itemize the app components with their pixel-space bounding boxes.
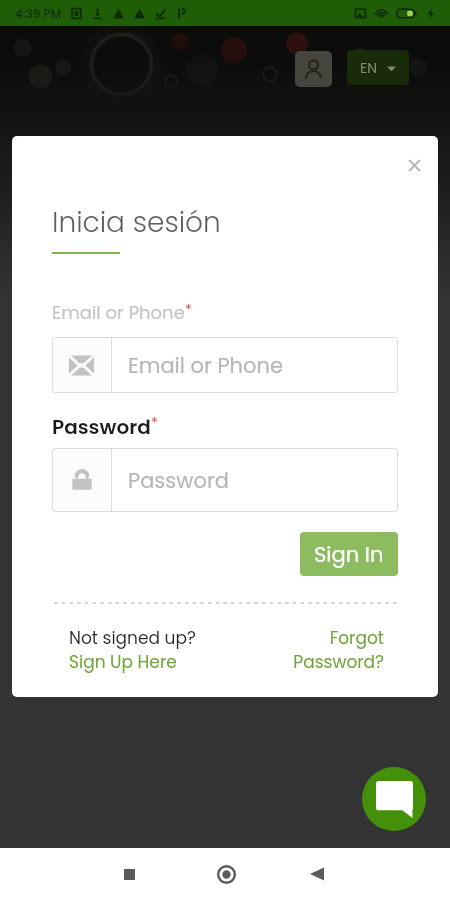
staticText: 4:39 PM: [15, 5, 62, 22]
button[interactable]: Close: [397, 148, 431, 182]
staticText: *: [151, 413, 158, 433]
button[interactable]: Home: [203, 851, 249, 897]
button[interactable]: EN: [347, 50, 409, 85]
button[interactable]: Sign In: [300, 532, 398, 576]
staticText: EN: [360, 58, 378, 78]
staticText: Email or Phone: [128, 351, 283, 380]
staticText: Inicia sesión: [52, 203, 221, 242]
button[interactable]: Account: [295, 51, 332, 87]
staticText: Email or Phone: [52, 300, 185, 325]
staticText: Sign Up Here: [69, 650, 177, 674]
button[interactable]: Chat: [362, 767, 426, 831]
staticText: Password: [52, 413, 151, 441]
button[interactable]: Password: [52, 448, 398, 512]
button[interactable]: Back: [294, 851, 340, 897]
staticText: Password: [128, 466, 229, 495]
staticText: Not signed up?: [69, 626, 196, 650]
button[interactable]: Not signed up?: [69, 626, 196, 674]
button[interactable]: Recents: [106, 851, 152, 897]
staticText: *: [185, 300, 192, 320]
staticText: Forgot: [329, 626, 384, 650]
staticText: Password?: [293, 650, 384, 674]
button[interactable]: Email or Phone: [52, 337, 398, 393]
button[interactable]: Forgot: [293, 626, 384, 674]
staticText: Sign In: [314, 540, 384, 569]
